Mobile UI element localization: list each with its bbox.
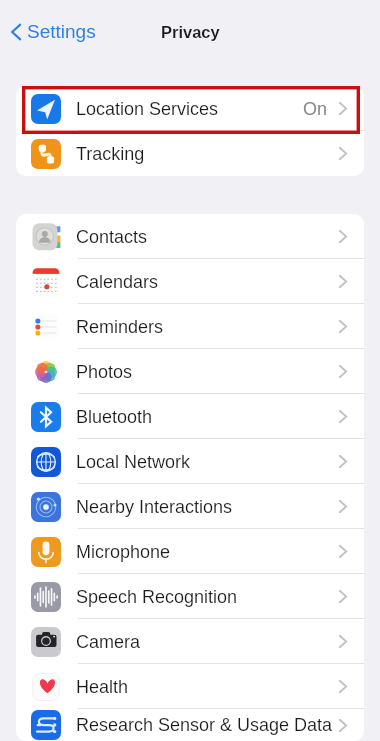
button[interactable]: Tracking — [16, 131, 364, 176]
staticText: Bluetooth — [76, 407, 153, 427]
button[interactable]: Local Network — [16, 439, 364, 484]
button[interactable]: Calendars — [16, 259, 364, 304]
button[interactable]: Settings — [11, 21, 96, 42]
staticText: Microphone — [76, 542, 171, 562]
button[interactable]: Microphone — [16, 529, 364, 574]
staticText: On — [303, 99, 328, 119]
button[interactable]: Location Services — [16, 86, 364, 131]
button[interactable]: Camera — [16, 619, 364, 664]
button[interactable]: Bluetooth — [16, 394, 364, 439]
staticText: Tracking — [76, 144, 145, 164]
button[interactable]: Research Sensor & Usage Data — [16, 709, 364, 741]
staticText: Nearby Interactions — [76, 497, 233, 517]
button[interactable]: Photos — [16, 349, 364, 394]
staticText: Local Network — [76, 452, 191, 472]
staticText: Settings — [27, 21, 96, 42]
staticText: Camera — [76, 632, 141, 652]
staticText: Health — [76, 677, 129, 697]
button[interactable]: Reminders — [16, 304, 364, 349]
staticText: Calendars — [76, 272, 159, 292]
staticText: Contacts — [76, 227, 148, 247]
staticText: Speech Recognition — [76, 587, 238, 607]
button[interactable]: Contacts — [16, 214, 364, 259]
staticText: Photos — [76, 362, 133, 382]
staticText: Research Sensor & Usage Data — [76, 715, 333, 735]
staticText: Location Services — [76, 99, 219, 119]
staticText: Reminders — [76, 317, 164, 337]
button[interactable]: Speech Recognition — [16, 574, 364, 619]
button[interactable]: Health — [16, 664, 364, 709]
staticText: Privacy — [161, 23, 220, 41]
button[interactable]: Nearby Interactions — [16, 484, 364, 529]
